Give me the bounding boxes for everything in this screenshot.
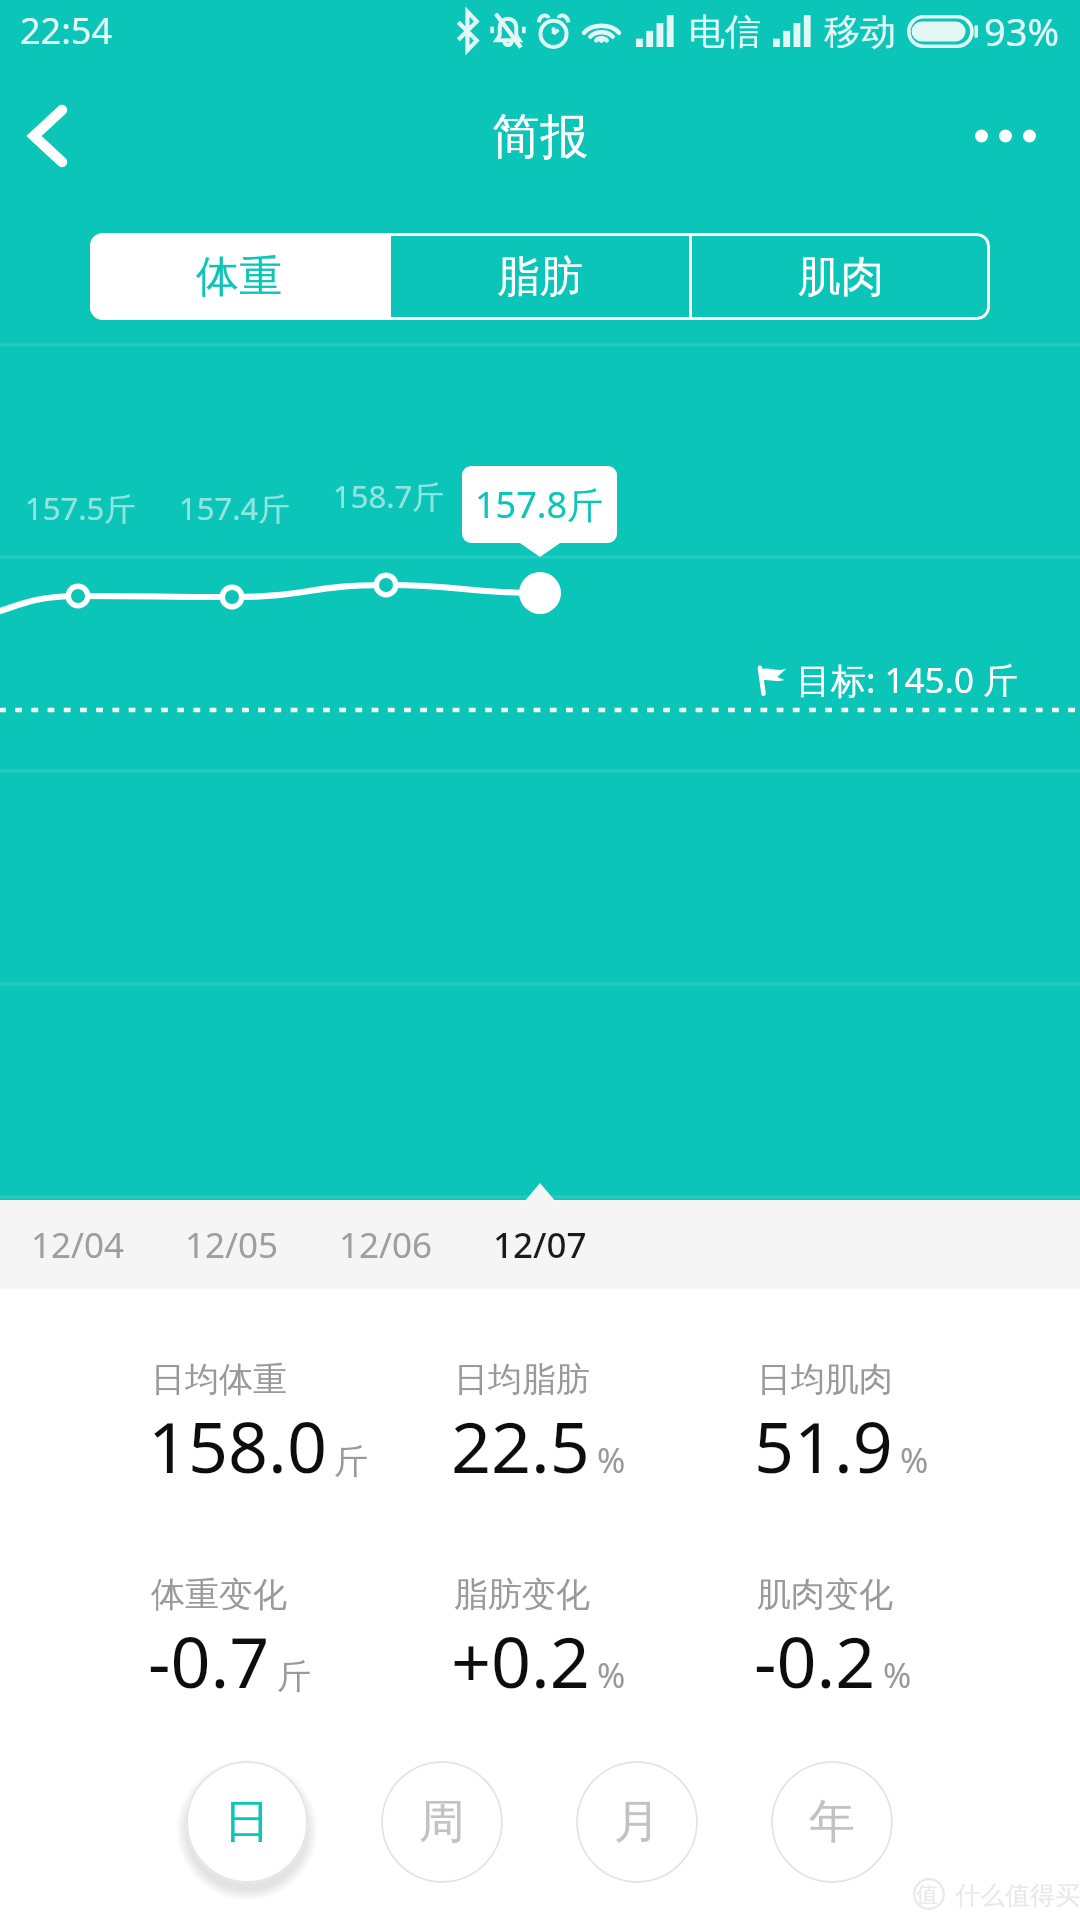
staticText: 斤 — [334, 1440, 368, 1483]
staticText: % — [900, 1437, 929, 1483]
staticText: 12/06 — [339, 1221, 433, 1269]
staticText: 157.5斤 — [25, 487, 136, 529]
staticText: 157.4斤 — [179, 487, 290, 529]
staticText: 日均肌肉 — [757, 1358, 893, 1401]
staticText: % — [597, 1652, 626, 1698]
staticText: 12/05 — [185, 1221, 279, 1269]
button[interactable]: 12/07 — [463, 1201, 617, 1289]
button[interactable]: Back — [0, 62, 110, 212]
staticText: 脂肪变化 — [454, 1573, 590, 1616]
button[interactable]: 日 — [186, 1761, 308, 1883]
staticText: 日均脂肪 — [454, 1358, 590, 1401]
button[interactable]: 周 — [381, 1761, 503, 1883]
staticText: 51.9 — [754, 1398, 893, 1493]
staticText: 值 — [916, 1881, 938, 1909]
staticText: 日均体重 — [151, 1358, 287, 1401]
staticText: 体重 — [196, 250, 282, 304]
staticText: % — [883, 1652, 912, 1698]
button[interactable]: 年 — [771, 1761, 893, 1883]
staticText: -0.7 — [148, 1613, 270, 1708]
staticText: 脂肪 — [497, 250, 583, 304]
staticText: 移动 — [824, 9, 896, 54]
button[interactable]: 体重 — [90, 233, 388, 320]
staticText: 目标: 145.0 斤 — [796, 656, 1019, 704]
button[interactable]: More options — [950, 62, 1080, 212]
staticText: 简报 — [492, 107, 588, 167]
staticText: 12/07 — [493, 1221, 587, 1269]
button[interactable]: 12/06 — [309, 1201, 463, 1289]
staticText: 电信 — [689, 9, 761, 54]
staticText: 93% — [984, 5, 1060, 57]
staticText: 22:54 — [20, 6, 113, 55]
staticText: 158.7斤 — [333, 475, 444, 517]
button[interactable]: 12/05 — [155, 1201, 309, 1289]
staticText: 12/04 — [31, 1221, 125, 1269]
button[interactable]: 12/04 — [1, 1201, 155, 1289]
staticText: 周 — [419, 1793, 465, 1851]
staticText: 肌肉 — [798, 250, 884, 304]
staticText: +0.2 — [451, 1613, 590, 1708]
button[interactable]: 肌肉 — [692, 233, 990, 320]
staticText: 体重变化 — [151, 1573, 287, 1616]
staticText: 157.8斤 — [475, 480, 604, 529]
staticText: 年 — [809, 1793, 855, 1851]
button[interactable]: 月 — [576, 1761, 698, 1883]
staticText: 斤 — [277, 1655, 311, 1698]
button[interactable]: 脂肪 — [391, 233, 689, 320]
staticText: -0.2 — [754, 1613, 876, 1708]
staticText: 什么值得买 — [955, 1880, 1080, 1911]
staticText: 月 — [614, 1793, 660, 1851]
staticText: 158.0 — [148, 1398, 327, 1493]
staticText: 日 — [224, 1793, 270, 1851]
staticText: % — [597, 1437, 626, 1483]
staticText: 肌肉变化 — [757, 1573, 893, 1616]
staticText: 22.5 — [451, 1398, 590, 1493]
